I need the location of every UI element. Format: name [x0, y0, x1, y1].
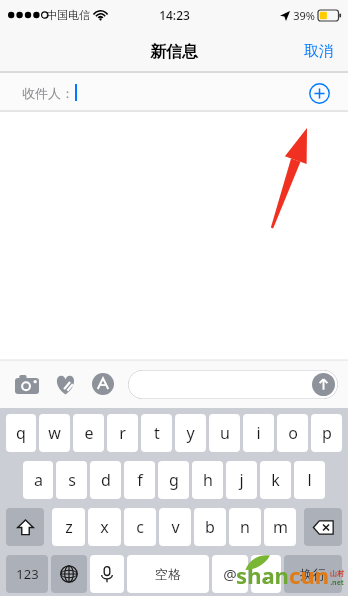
staticText: d [101, 469, 111, 491]
staticText: . [264, 564, 269, 584]
button[interactable]: q [6, 414, 36, 452]
button[interactable]: w [39, 414, 70, 452]
button[interactable]: h [192, 461, 223, 499]
staticText: k [271, 469, 280, 491]
button[interactable]: f [124, 461, 155, 499]
staticText: .net [330, 578, 344, 588]
button[interactable]: Shift [6, 508, 44, 546]
button[interactable]: Camera [10, 367, 44, 401]
staticText: o [288, 422, 298, 444]
button[interactable]: j [226, 461, 257, 499]
button[interactable]: r [107, 414, 138, 452]
staticText: e [84, 422, 94, 444]
staticText: 14:23 [159, 7, 190, 23]
staticText: 空格 [155, 566, 181, 582]
button[interactable]: Digital Touch [48, 367, 82, 401]
button[interactable]: d [90, 461, 121, 499]
button[interactable]: p [311, 414, 342, 452]
button[interactable]: k [260, 461, 291, 499]
button[interactable]: v [159, 508, 191, 546]
button[interactable]: m [264, 508, 296, 546]
button[interactable]: l [294, 461, 325, 499]
button[interactable]: t [141, 414, 172, 452]
staticText: shan [236, 560, 289, 590]
button[interactable]: 取消 [290, 34, 348, 69]
staticText: @ [223, 564, 237, 584]
button[interactable]: 123 [6, 555, 48, 593]
button[interactable]: i [243, 414, 274, 452]
button[interactable]: e [73, 414, 104, 452]
staticText: x [100, 516, 109, 538]
staticText: 取消 [304, 42, 334, 61]
staticText: cun [289, 560, 329, 590]
staticText: v [171, 516, 180, 538]
staticText: 39% [293, 8, 315, 23]
button[interactable]: Add contact [304, 78, 334, 108]
staticText: u [220, 422, 230, 444]
button[interactable]: Backspace [304, 508, 342, 546]
button[interactable]: n [229, 508, 261, 546]
button[interactable]: s [56, 461, 87, 499]
button[interactable]: a [23, 461, 53, 499]
button[interactable]: g [158, 461, 189, 499]
staticText: q [16, 422, 26, 444]
staticText: z [65, 516, 73, 538]
staticText: l [307, 469, 312, 491]
button[interactable]: 空格 [127, 555, 209, 593]
button[interactable]: 换行 [284, 555, 342, 593]
staticText: y [186, 422, 195, 444]
button[interactable]: Send [128, 370, 338, 399]
staticText: j [239, 469, 244, 491]
staticText: a [34, 469, 43, 491]
staticText: c [136, 516, 144, 538]
button[interactable]: Dictation [90, 555, 124, 593]
staticText: 中国电信 [46, 8, 90, 22]
button[interactable]: y [175, 414, 206, 452]
staticText: f [137, 469, 143, 491]
button[interactable]: . [251, 555, 281, 593]
staticText: t [154, 422, 160, 444]
button[interactable]: u [209, 414, 240, 452]
button[interactable]: @ [212, 555, 248, 593]
staticText: r [119, 422, 126, 444]
button[interactable]: b [194, 508, 226, 546]
button[interactable]: c [124, 508, 156, 546]
staticText: m [273, 516, 288, 538]
staticText: b [205, 516, 215, 538]
staticText: 换行 [300, 566, 326, 582]
button[interactable]: x [88, 508, 121, 546]
button[interactable]: o [277, 414, 308, 452]
staticText: n [240, 516, 250, 538]
staticText: s [68, 469, 76, 491]
staticText: 山村 [330, 569, 344, 578]
staticText: 123 [16, 565, 39, 583]
staticText: 收件人： [22, 85, 74, 101]
button[interactable]: Send [311, 372, 336, 397]
staticText: h [203, 469, 213, 491]
button[interactable]: 收件人： [0, 73, 348, 112]
staticText: 新信息 [150, 42, 198, 62]
staticText: g [169, 469, 179, 491]
staticText: p [322, 422, 332, 444]
staticText: i [256, 422, 261, 444]
staticText: w [48, 422, 61, 444]
button[interactable]: iMessage Apps [86, 367, 120, 401]
button[interactable]: Change keyboard [51, 555, 87, 593]
button[interactable]: z [52, 508, 85, 546]
